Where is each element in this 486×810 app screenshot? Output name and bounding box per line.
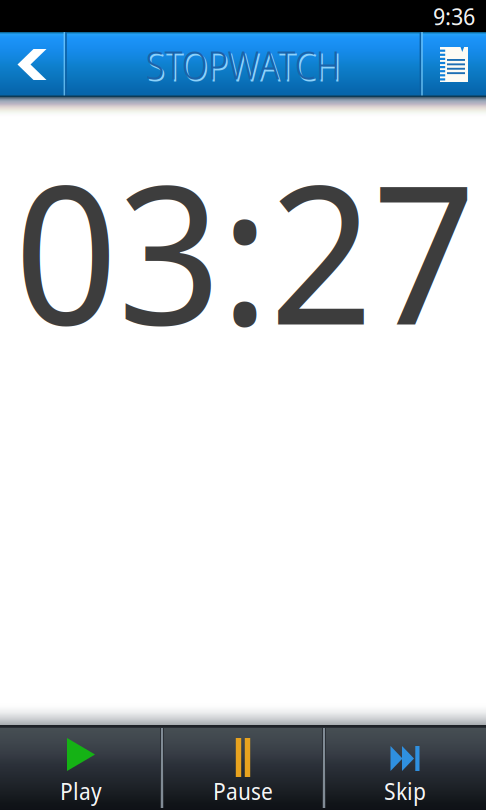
button[interactable]: Pause <box>162 725 324 810</box>
button[interactable]: Back <box>0 32 64 97</box>
staticText: 9:36 <box>433 0 475 32</box>
staticText: STOPWATCH <box>145 38 340 91</box>
staticText: STOPWATCH <box>147 40 342 93</box>
staticText: Pause <box>213 775 273 807</box>
staticText: Skip <box>384 775 426 807</box>
button[interactable]: Play <box>0 725 162 810</box>
button[interactable]: Laps <box>422 32 486 97</box>
staticText: Play <box>60 775 102 807</box>
button[interactable]: Skip <box>324 725 486 810</box>
staticText: 03:27 <box>14 119 475 381</box>
